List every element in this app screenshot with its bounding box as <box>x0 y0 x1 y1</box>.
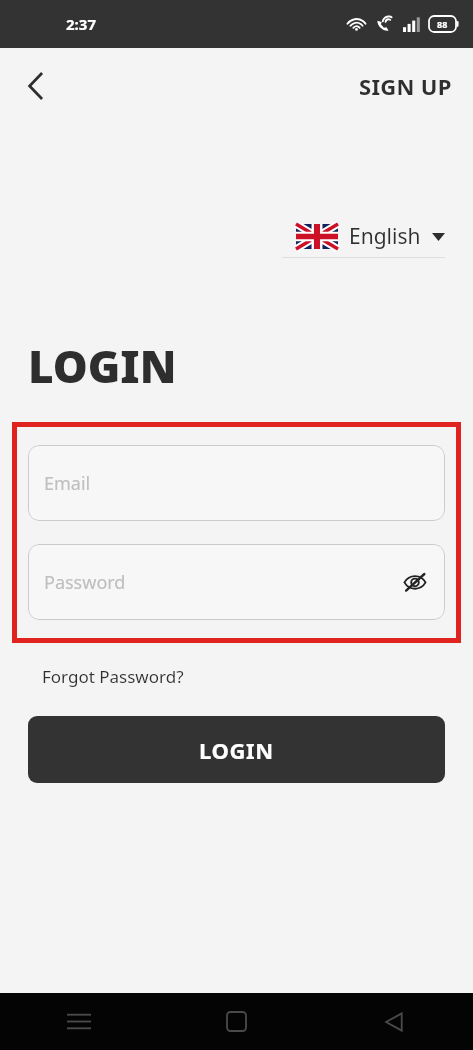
button[interactable]: SIGN UP <box>338 63 473 109</box>
button[interactable]: Home <box>157 993 315 1050</box>
button[interactable]: English <box>296 222 445 251</box>
button[interactable]: Back <box>14 64 58 108</box>
staticText: SIGN UP <box>359 71 452 101</box>
button[interactable]: Password <box>28 544 445 620</box>
button[interactable]: Show password <box>397 564 433 600</box>
button[interactable]: Email <box>28 445 445 521</box>
staticText: Password <box>44 570 126 595</box>
staticText: 88 <box>437 18 448 30</box>
button[interactable]: Recent apps <box>0 993 157 1050</box>
staticText: English <box>349 222 421 251</box>
button[interactable]: LOGIN <box>28 716 445 783</box>
staticText: 2:37 <box>66 14 96 34</box>
staticText: Email <box>44 471 91 496</box>
button[interactable]: Back <box>315 993 473 1050</box>
staticText: LOGIN <box>199 735 274 765</box>
staticText: LOGIN <box>28 336 177 396</box>
button[interactable]: Forgot Password? <box>42 665 184 688</box>
